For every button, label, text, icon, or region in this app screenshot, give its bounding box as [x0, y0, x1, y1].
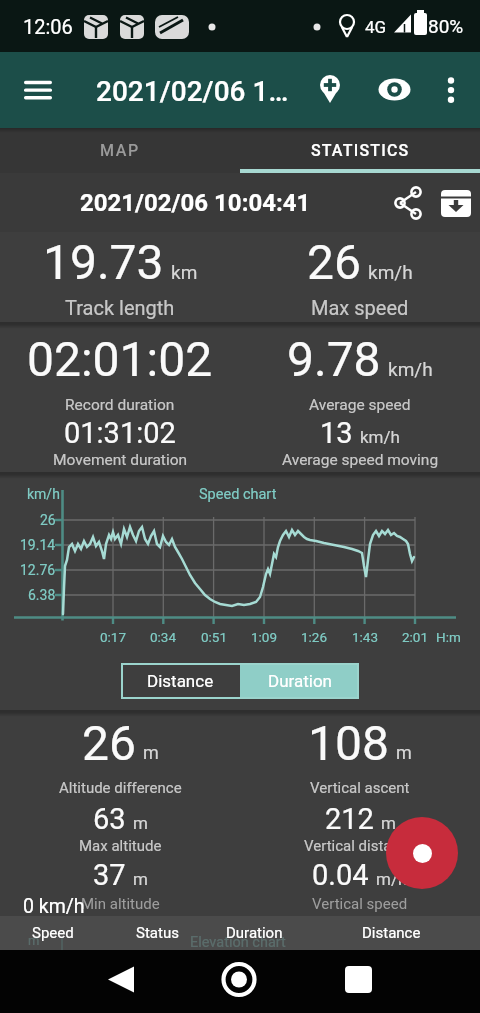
staticText: 2021/02/06 1…	[96, 75, 289, 108]
staticText: m/h	[376, 869, 408, 889]
staticText: 0:34	[150, 629, 177, 645]
staticText: Record duration	[65, 396, 175, 414]
staticText: 01:31:02	[64, 416, 176, 448]
staticText: 0:51	[201, 629, 228, 645]
staticText: 12:06	[23, 15, 73, 38]
staticText: Average speed	[309, 396, 411, 414]
button[interactable]	[320, 950, 480, 1013]
button[interactable]: Duration	[240, 663, 359, 699]
staticText: Status	[136, 924, 179, 942]
button[interactable]	[160, 950, 320, 1013]
staticText: 0 km/h	[23, 895, 85, 918]
staticText: Distance	[147, 671, 214, 691]
staticText: 9.78	[287, 331, 381, 387]
button[interactable]	[370, 66, 418, 114]
staticText: STATISTICS	[311, 141, 410, 160]
staticText: m	[143, 742, 159, 763]
staticText: km/h	[368, 261, 413, 283]
staticText: 1:09	[251, 629, 278, 645]
staticText: m	[133, 813, 148, 833]
staticText: Min altitude	[81, 895, 160, 913]
staticText: Vertical distance	[304, 837, 416, 855]
button[interactable]	[386, 179, 432, 225]
staticText: Elevation chart	[190, 934, 286, 951]
staticText: km/h	[388, 358, 433, 380]
staticText: km/h	[360, 427, 400, 447]
staticText: 19.73	[43, 234, 164, 290]
button[interactable]	[306, 66, 354, 114]
staticText: Distance	[362, 924, 421, 942]
staticText: 108	[308, 715, 389, 771]
staticText: 1:43	[352, 629, 379, 645]
staticText: 26	[40, 512, 56, 528]
staticText: 0:17	[100, 629, 127, 645]
staticText: 212	[325, 802, 374, 834]
button[interactable]	[386, 817, 458, 889]
staticText: 2021/02/06 10:04:41	[80, 189, 311, 217]
staticText: Duration	[226, 924, 283, 942]
staticText: 1:26	[301, 629, 328, 645]
staticText: m	[396, 742, 412, 763]
staticText: Movement duration	[53, 451, 188, 469]
staticText: 37	[93, 858, 126, 892]
staticText: 2:01	[402, 629, 429, 645]
staticText: 19.14	[20, 537, 56, 553]
staticText: Duration	[268, 671, 332, 691]
staticText: 6.38	[28, 587, 56, 603]
staticText: 13	[320, 416, 353, 448]
staticText: km	[171, 261, 198, 283]
button[interactable]	[434, 179, 480, 225]
button[interactable]: MAP	[0, 128, 240, 173]
staticText: 0.04	[312, 858, 369, 892]
staticText: Average speed moving	[282, 451, 439, 469]
staticText: Altitude difference	[59, 779, 182, 797]
button[interactable]: Distance	[121, 663, 240, 699]
staticText: 4G	[365, 17, 387, 37]
staticText: H:m	[436, 629, 461, 645]
staticText: km/h	[27, 486, 60, 502]
button[interactable]: STATISTICS	[240, 128, 480, 173]
staticText: Track length	[65, 296, 175, 319]
staticText: 80%	[428, 15, 464, 37]
staticText: Speed	[32, 924, 74, 942]
staticText: 12.76	[20, 562, 56, 578]
staticText: Speed chart	[199, 486, 277, 503]
staticText: Vertical speed	[312, 895, 408, 913]
staticText: m	[28, 933, 40, 948]
staticText: 26	[82, 715, 136, 771]
staticText: MAP	[100, 141, 140, 160]
button[interactable]	[0, 950, 160, 1013]
button[interactable]	[8, 62, 64, 118]
staticText: Vertical ascent	[310, 779, 410, 797]
staticText: Max speed	[311, 296, 409, 319]
staticText: 63	[93, 802, 126, 834]
staticText: m	[381, 813, 396, 833]
staticText: m	[133, 869, 148, 889]
button[interactable]	[428, 66, 476, 114]
staticText: 02:01:02	[27, 331, 213, 387]
staticText: Max altitude	[79, 837, 162, 855]
staticText: 26	[307, 234, 361, 290]
